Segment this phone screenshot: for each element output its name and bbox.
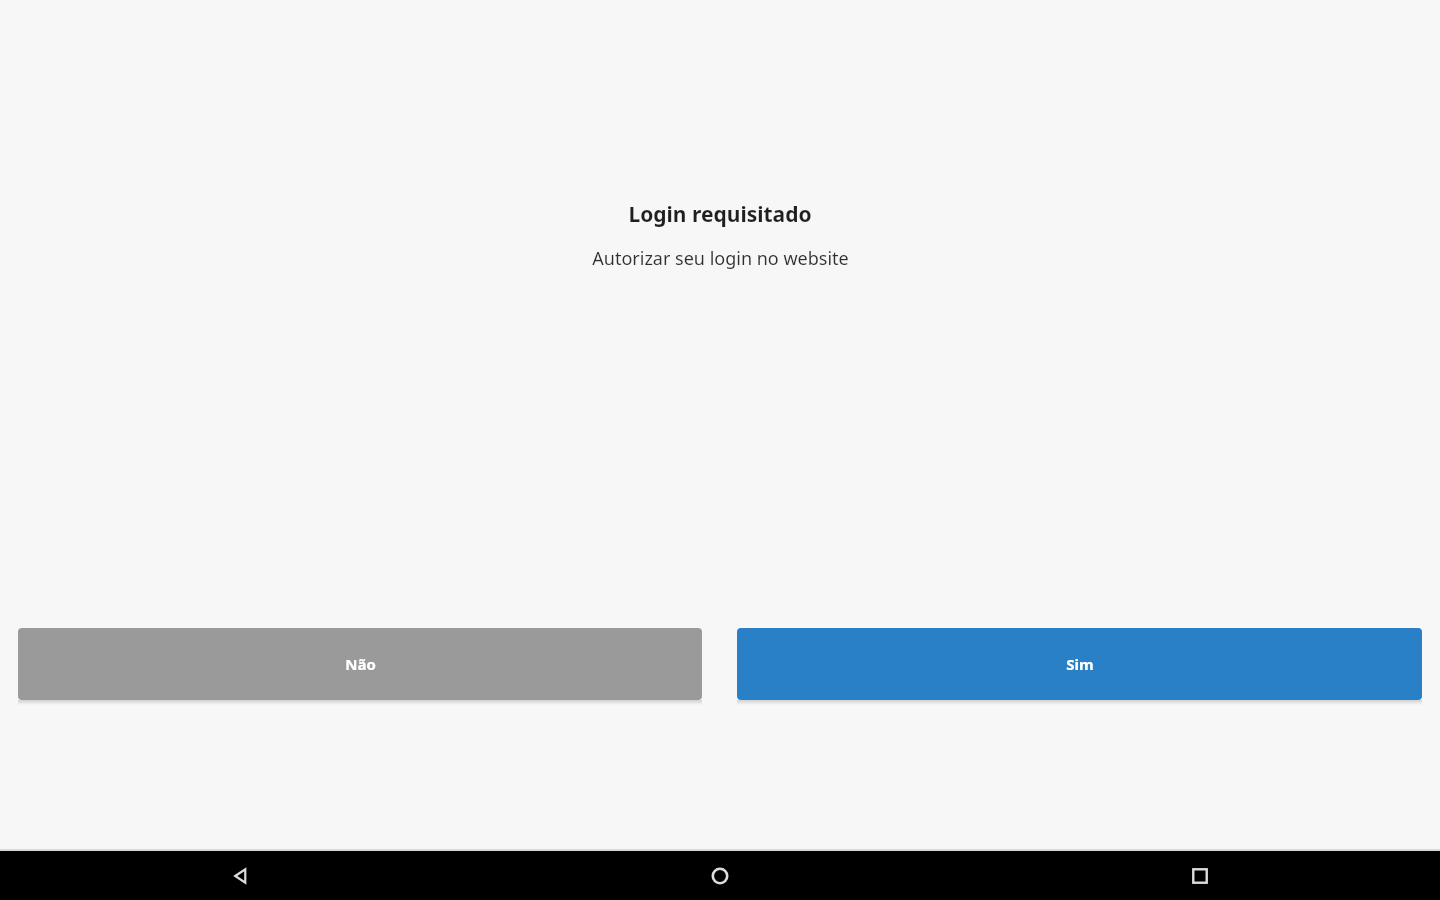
- button[interactable]: Home: [480, 851, 960, 900]
- staticText: Login requisitado: [628, 200, 812, 229]
- button[interactable]: Back: [0, 851, 480, 900]
- staticText: Sim: [1066, 654, 1094, 674]
- staticText: Não: [345, 654, 376, 674]
- staticText: Autorizar seu login no website: [592, 246, 849, 271]
- button[interactable]: Recents: [960, 851, 1440, 900]
- button[interactable]: Não: [18, 628, 702, 700]
- button[interactable]: Sim: [737, 628, 1422, 700]
